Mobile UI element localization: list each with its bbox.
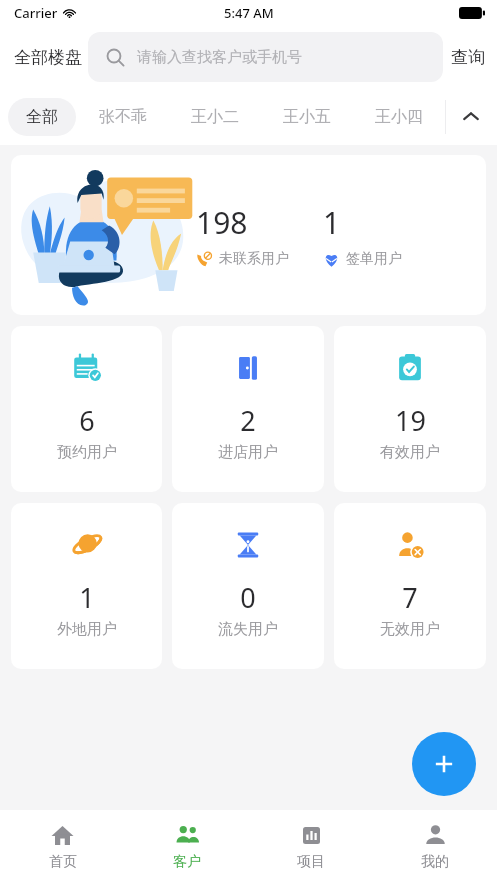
staticText: 预约用户 bbox=[57, 443, 117, 462]
button[interactable]: 请输入查找客户或手机号 bbox=[88, 32, 443, 82]
staticText: 请输入查找客户或手机号 bbox=[137, 48, 302, 67]
button[interactable]: 张不乖 bbox=[76, 88, 169, 145]
staticText: 1 bbox=[79, 579, 95, 616]
staticText: 未联系用户 bbox=[219, 250, 289, 268]
button[interactable]: Add customer bbox=[412, 732, 476, 796]
staticText: 进店用户 bbox=[218, 443, 278, 462]
button[interactable]: Collapse tabs bbox=[445, 88, 497, 145]
staticText: 签单用户 bbox=[346, 250, 402, 268]
staticText: 无效用户 bbox=[380, 620, 440, 639]
staticText: 项目 bbox=[297, 853, 325, 871]
staticText: 查询 bbox=[451, 47, 485, 68]
staticText: 王小二 bbox=[191, 107, 239, 127]
button[interactable]: 王小五 bbox=[261, 88, 353, 145]
button[interactable]: 王小二 bbox=[169, 88, 261, 145]
button[interactable]: 2 bbox=[172, 326, 324, 492]
button[interactable]: 王小四 bbox=[353, 88, 445, 145]
button[interactable]: 19 bbox=[334, 326, 486, 492]
staticText: 流失用户 bbox=[218, 620, 278, 639]
button[interactable]: 客户 bbox=[125, 810, 249, 883]
button[interactable]: 首页 bbox=[0, 810, 125, 883]
staticText: 0 bbox=[240, 579, 256, 616]
staticText: 我的 bbox=[421, 853, 449, 871]
staticText: 有效用户 bbox=[380, 443, 440, 462]
staticText: 5:47 AM bbox=[224, 4, 274, 22]
button[interactable]: 0 bbox=[172, 503, 324, 669]
staticText: 客户 bbox=[173, 853, 201, 871]
button[interactable]: 198 bbox=[11, 155, 486, 315]
button[interactable]: 我的 bbox=[373, 810, 497, 883]
staticText: 首页 bbox=[49, 853, 77, 871]
staticText: 全部楼盘 bbox=[14, 47, 82, 68]
button[interactable]: 全部楼盘 bbox=[0, 47, 88, 68]
button[interactable]: 全部 bbox=[8, 98, 76, 136]
button[interactable]: 项目 bbox=[249, 810, 373, 883]
staticText: 外地用户 bbox=[57, 620, 117, 639]
button[interactable]: 1 bbox=[11, 503, 162, 669]
button[interactable]: 7 bbox=[334, 503, 486, 669]
staticText: 王小四 bbox=[375, 107, 423, 127]
staticText: 198 bbox=[196, 202, 248, 243]
staticText: 1 bbox=[323, 202, 341, 243]
staticText: 19 bbox=[395, 402, 426, 439]
staticText: 2 bbox=[240, 402, 256, 439]
staticText: Carrier bbox=[14, 4, 58, 22]
staticText: 张不乖 bbox=[99, 107, 147, 127]
staticText: 7 bbox=[402, 579, 418, 616]
staticText: 6 bbox=[79, 402, 95, 439]
button[interactable]: 6 bbox=[11, 326, 162, 492]
staticText: 全部 bbox=[26, 107, 58, 127]
button[interactable]: 查询 bbox=[443, 47, 497, 68]
staticText: 王小五 bbox=[283, 107, 331, 127]
